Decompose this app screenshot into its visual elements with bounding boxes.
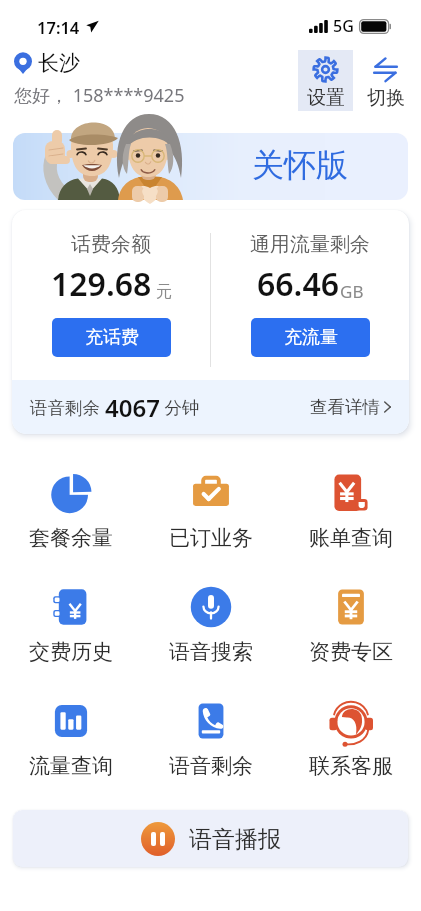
staticText: 元 [156, 282, 172, 302]
button[interactable]: 切换 [358, 50, 413, 111]
button[interactable]: 流量查询 [0, 698, 141, 779]
staticText: 66.46 [257, 262, 340, 306]
button[interactable]: 账单查询 [281, 470, 421, 551]
button[interactable]: 语音剩余 [12, 380, 409, 434]
staticText: 17:14 [37, 16, 80, 38]
button[interactable]: 充流量 [251, 318, 370, 357]
staticText: 语音剩余 [169, 753, 253, 779]
staticText: 4067 [105, 391, 160, 424]
button[interactable]: 语音搜索 [141, 584, 281, 665]
button[interactable]: 语音播报 [13, 810, 408, 867]
button[interactable]: 设置 [298, 50, 353, 111]
staticText: 语音剩余 [30, 395, 105, 419]
staticText: 长沙 [38, 50, 80, 76]
other: 切换 [372, 56, 399, 83]
staticText: 分钟 [160, 395, 200, 419]
staticText: 通用流量剩余 [250, 232, 370, 257]
other: 设置 [312, 56, 339, 83]
button[interactable]: 联系客服 [281, 698, 421, 779]
button[interactable]: 充话费 [52, 318, 171, 357]
staticText: 交费历史 [29, 639, 113, 665]
staticText: 语音播报 [189, 825, 281, 854]
staticText: 129.68 [51, 262, 152, 306]
staticText: 设置 [307, 86, 345, 110]
button[interactable]: 语音剩余 [141, 698, 281, 779]
staticText: 充话费 [85, 326, 139, 349]
staticText: 套餐余量 [29, 525, 113, 551]
button[interactable]: 套餐余量 [0, 470, 141, 551]
staticText: 您好， 158****9425 [14, 83, 185, 108]
button[interactable]: 资费专区 [281, 584, 421, 665]
staticText: 流量查询 [29, 753, 113, 779]
button[interactable]: 交费历史 [0, 584, 141, 665]
button[interactable]: 关怀版 [13, 133, 408, 200]
staticText: 话费余额 [71, 232, 151, 257]
staticText: GB [340, 280, 364, 303]
staticText: 账单查询 [309, 525, 393, 551]
staticText: 关怀版 [252, 145, 348, 185]
staticText: 切换 [367, 86, 405, 110]
staticText: 充流量 [284, 326, 338, 349]
staticText: 语音搜索 [169, 639, 253, 665]
staticText: 联系客服 [309, 753, 393, 779]
staticText: 资费专区 [309, 639, 393, 665]
staticText: 5G [333, 15, 354, 37]
staticText: 查看详情 [310, 396, 380, 418]
button[interactable]: 已订业务 [141, 470, 281, 551]
staticText: 已订业务 [169, 525, 253, 551]
